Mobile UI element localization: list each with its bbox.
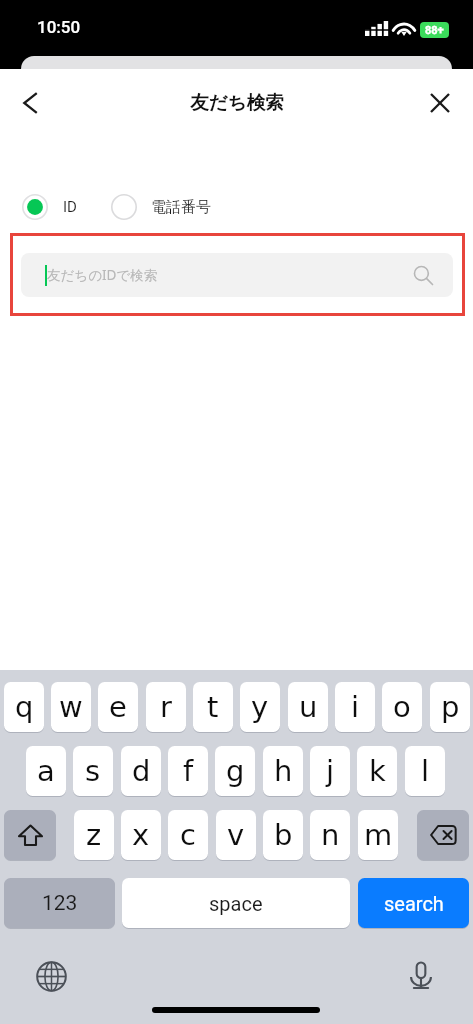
staticText: x — [132, 818, 150, 852]
button[interactable]: d — [121, 746, 161, 796]
button[interactable]: t — [193, 682, 233, 732]
staticText: 88+ — [425, 24, 444, 37]
button[interactable]: b — [263, 810, 303, 860]
button[interactable]: v — [216, 810, 256, 860]
button[interactable]: Back — [3, 69, 59, 137]
staticText: ID — [63, 198, 77, 216]
staticText: d — [132, 754, 151, 788]
button[interactable]: z — [74, 810, 114, 860]
staticText: k — [369, 754, 386, 788]
button[interactable]: Backspace — [417, 810, 469, 860]
staticText: a — [37, 754, 55, 788]
button[interactable]: s — [73, 746, 113, 796]
button[interactable]: n — [310, 810, 350, 860]
staticText: z — [86, 818, 102, 852]
button[interactable]: o — [382, 682, 422, 732]
staticText: e — [109, 690, 127, 724]
button[interactable]: 電話番号 — [111, 194, 211, 220]
button[interactable]: Voice input — [398, 953, 444, 999]
staticText: i — [351, 690, 360, 724]
button[interactable]: f — [168, 746, 208, 796]
button[interactable]: ID — [22, 194, 77, 220]
staticText: y — [251, 690, 269, 724]
staticText: u — [299, 690, 318, 724]
button[interactable]: u — [288, 682, 328, 732]
staticText: n — [321, 818, 340, 852]
staticText: q — [15, 690, 34, 724]
staticText: m — [364, 818, 393, 852]
staticText: 電話番号 — [151, 198, 211, 217]
button[interactable]: j — [310, 746, 350, 796]
button[interactable]: Numbers — [4, 878, 115, 928]
staticText: w — [59, 690, 83, 724]
button[interactable]: q — [4, 682, 44, 732]
button[interactable]: m — [358, 810, 398, 860]
button[interactable]: Close — [412, 69, 468, 137]
button[interactable]: i — [335, 682, 375, 732]
button[interactable]: search — [358, 878, 469, 928]
staticText: 123 — [42, 891, 78, 916]
staticText: search — [384, 892, 444, 915]
button[interactable]: 友だちのIDで検索 — [21, 253, 453, 297]
staticText: v — [227, 818, 245, 852]
button[interactable]: c — [168, 810, 208, 860]
staticText: 10:50 — [37, 17, 81, 37]
staticText: h — [274, 754, 293, 788]
button[interactable]: x — [121, 810, 161, 860]
staticText: t — [207, 690, 219, 724]
staticText: b — [274, 818, 293, 852]
button[interactable]: r — [146, 682, 186, 732]
button[interactable]: w — [51, 682, 91, 732]
staticText: space — [209, 892, 263, 915]
staticText: f — [183, 754, 194, 788]
button[interactable]: h — [263, 746, 303, 796]
button[interactable]: a — [26, 746, 66, 796]
button[interactable]: Shift — [4, 810, 56, 860]
button[interactable]: Change keyboard — [28, 953, 74, 999]
button[interactable]: g — [215, 746, 255, 796]
staticText: s — [85, 754, 101, 788]
staticText: p — [441, 690, 460, 724]
button[interactable]: p — [430, 682, 470, 732]
staticText: o — [393, 690, 411, 724]
button[interactable]: y — [240, 682, 280, 732]
staticText: l — [421, 754, 430, 788]
button[interactable]: k — [357, 746, 397, 796]
staticText: g — [226, 754, 245, 788]
button[interactable]: space — [122, 878, 350, 928]
staticText: 友だち検索 — [190, 91, 284, 114]
button[interactable]: e — [98, 682, 138, 732]
button[interactable]: l — [405, 746, 445, 796]
staticText: c — [180, 818, 196, 852]
staticText: j — [326, 754, 335, 788]
staticText: 友だちのIDで検索 — [47, 266, 158, 284]
staticText: r — [160, 690, 172, 724]
